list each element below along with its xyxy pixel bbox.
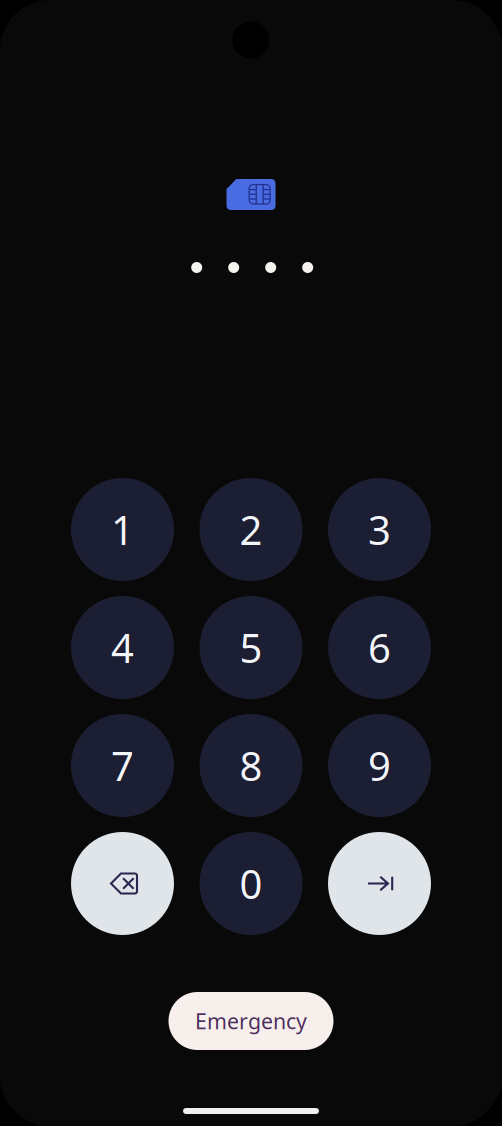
staticText: 8: [239, 739, 262, 792]
button[interactable]: 2: [199, 478, 302, 581]
button[interactable]: 0: [199, 832, 302, 935]
staticText: 9: [368, 739, 391, 792]
button[interactable]: Submit: [328, 832, 431, 935]
staticText: Emergency: [195, 1007, 307, 1035]
staticText: 4: [111, 621, 134, 674]
button[interactable]: 5: [199, 596, 302, 699]
button[interactable]: Emergency: [168, 992, 333, 1050]
button[interactable]: 4: [71, 596, 174, 699]
staticText: 1: [111, 503, 134, 556]
button[interactable]: Delete: [71, 832, 174, 935]
button[interactable]: 1: [71, 478, 174, 581]
button[interactable]: 3: [328, 478, 431, 581]
staticText: 3: [368, 503, 391, 556]
staticText: 6: [368, 621, 391, 674]
button[interactable]: 9: [328, 714, 431, 817]
staticText: 5: [239, 621, 262, 674]
staticText: 2: [239, 503, 262, 556]
staticText: 0: [239, 857, 262, 910]
staticText: 7: [111, 739, 134, 792]
button[interactable]: 6: [328, 596, 431, 699]
button[interactable]: 7: [71, 714, 174, 817]
button[interactable]: 8: [199, 714, 302, 817]
